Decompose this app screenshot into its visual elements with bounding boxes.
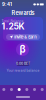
staticText: Rewards [11, 10, 34, 16]
button[interactable]: Tab [8, 85, 15, 94]
staticText: β [19, 43, 25, 55]
staticText: 9:41 [2, 2, 12, 7]
button[interactable]: Tab [31, 85, 38, 94]
button[interactable]: Tab [38, 85, 46, 94]
button[interactable]: Tab [0, 85, 8, 94]
button[interactable]: Invite & Earn [6, 34, 40, 40]
staticText: Invite & Earn [14, 35, 36, 39]
button[interactable]: Tab [15, 85, 23, 94]
button[interactable]: Tab [23, 85, 31, 94]
staticText: 1.25K [1, 21, 24, 32]
staticText: Your reward balance [6, 69, 39, 72]
staticText: 0.00 BET [16, 61, 30, 65]
staticText: Total Balance [1, 19, 23, 23]
